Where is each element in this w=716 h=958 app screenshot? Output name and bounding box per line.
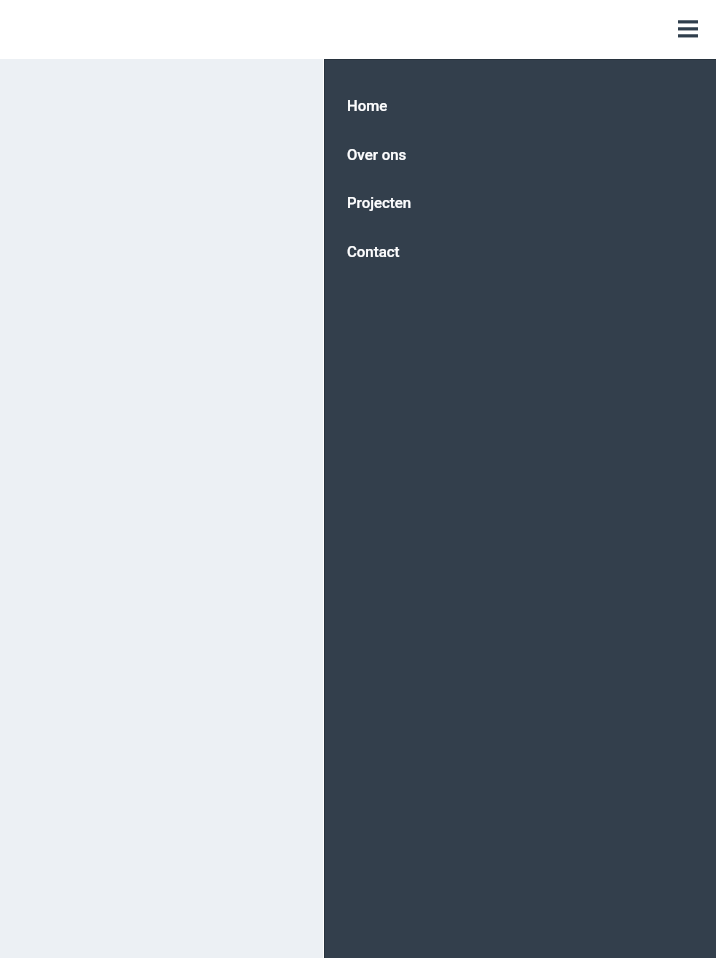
staticText: Projecten — [347, 194, 412, 212]
button[interactable]: Open navigation menu — [670, 10, 706, 46]
button[interactable]: Contact — [325, 227, 716, 276]
button[interactable]: Over ons — [325, 130, 716, 179]
button[interactable]: Projecten — [325, 178, 716, 227]
staticText: Contact — [347, 243, 400, 261]
staticText: Home — [347, 97, 388, 115]
staticText: Over ons — [347, 146, 407, 164]
button[interactable]: Home — [325, 81, 716, 130]
